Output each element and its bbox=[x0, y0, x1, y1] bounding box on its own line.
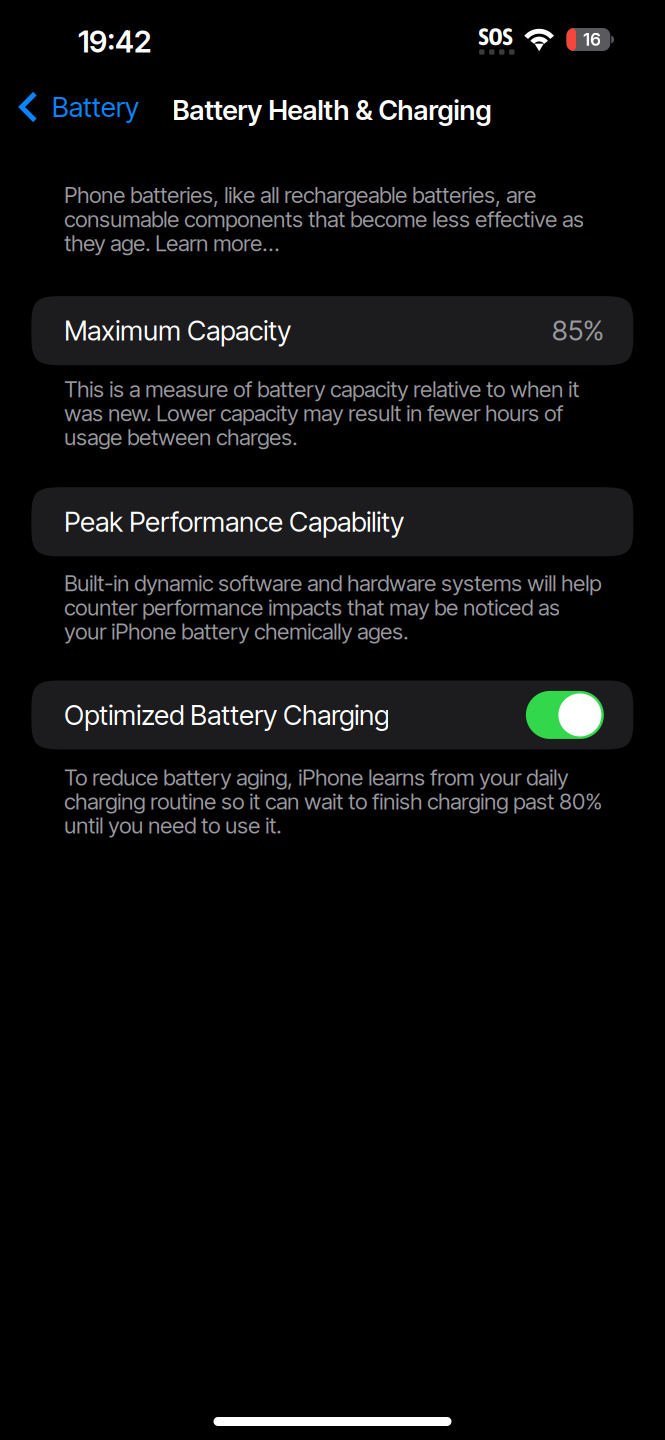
button[interactable]: Maximum Capacity bbox=[0, 296, 633, 365]
button[interactable]: Optimized Battery Charging bbox=[0, 680, 633, 749]
staticText: This is a measure of battery capacity re… bbox=[64, 377, 579, 449]
staticText: Battery Health & Charging bbox=[172, 93, 491, 127]
button[interactable]: Peak Performance Capability bbox=[0, 487, 633, 556]
staticText: Optimized Battery Charging bbox=[64, 698, 389, 732]
staticText: Battery bbox=[52, 90, 139, 124]
button[interactable]: Battery bbox=[0, 74, 151, 140]
staticText: Built-in dynamic software and hardware s… bbox=[64, 571, 601, 643]
staticText: 16 bbox=[583, 29, 601, 50]
staticText: Phone batteries, like all rechargeable b… bbox=[64, 183, 584, 255]
staticText: To reduce battery aging, iPhone learns f… bbox=[64, 765, 602, 837]
staticText: Maximum Capacity bbox=[64, 314, 291, 347]
staticText: SOS bbox=[478, 23, 512, 50]
staticText: 19:42 bbox=[78, 23, 151, 60]
staticText: Peak Performance Capability bbox=[64, 505, 404, 538]
staticText: 85% bbox=[552, 314, 604, 347]
